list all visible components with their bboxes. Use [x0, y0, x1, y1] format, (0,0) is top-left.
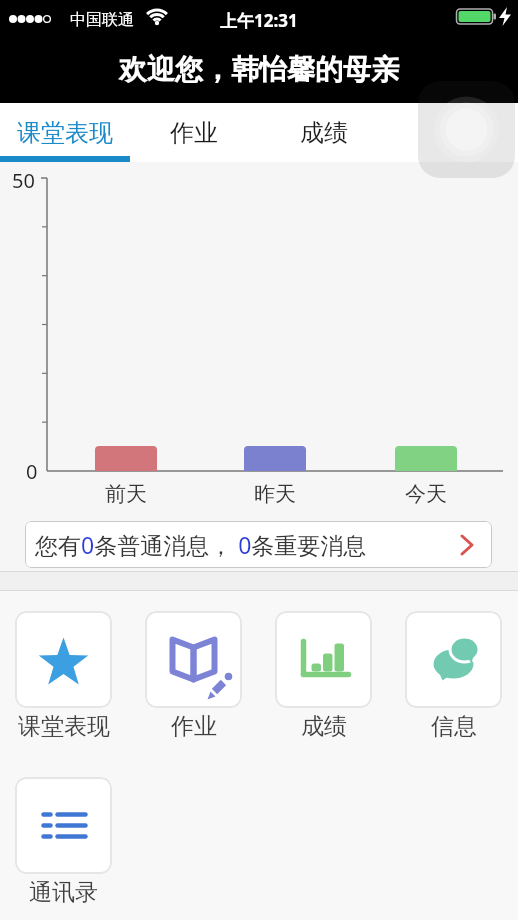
staticText: 成绩 [300, 118, 348, 148]
button[interactable] [145, 611, 242, 708]
staticText: 成绩 [301, 712, 347, 741]
button[interactable]: 您有0条普通消息， 0条重要消息 [25, 521, 492, 568]
staticText: 中国联通 [70, 10, 134, 30]
staticText: 50 [12, 167, 35, 194]
staticText: 欢迎您，韩怡馨的母亲 [119, 52, 399, 87]
staticText: 通讯录 [29, 878, 98, 907]
staticText: 信息 [431, 712, 477, 741]
staticText: 作业 [171, 712, 217, 741]
button[interactable] [275, 611, 372, 708]
staticText: 您有0条普通消息， 0条重要消息 [35, 529, 367, 560]
button[interactable] [418, 81, 515, 178]
button[interactable] [15, 777, 112, 874]
staticText: 前天 [105, 481, 147, 507]
button[interactable]: 课堂表现 [0, 103, 130, 162]
staticText: 今天 [405, 481, 447, 507]
staticText: 作业 [170, 118, 218, 148]
staticText: 上午12:31 [220, 9, 298, 32]
button[interactable] [15, 611, 112, 708]
staticText: 课堂表现 [17, 118, 113, 148]
button[interactable] [405, 611, 502, 708]
staticText: 课堂表现 [18, 712, 110, 741]
staticText: 昨天 [254, 481, 296, 507]
button[interactable]: 作业 [129, 103, 259, 162]
button[interactable]: 成绩 [259, 103, 389, 162]
staticText: 0 [26, 458, 38, 485]
